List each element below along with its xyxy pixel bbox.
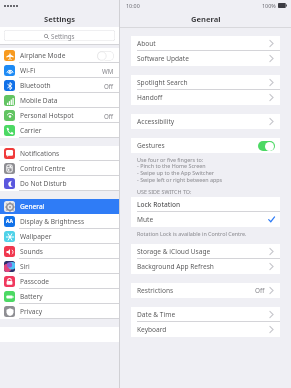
button[interactable]: Mobile Data [0,93,119,108]
staticText: Off [255,286,265,295]
staticText: Lock Rotation [137,200,181,209]
button[interactable]: Sounds [0,244,119,259]
staticText: Accessibility [137,117,175,126]
staticText: Display & Brightness [20,217,85,226]
button[interactable] [97,51,114,61]
button[interactable]: Passcode [0,274,119,289]
button[interactable]: Carrier [0,123,119,138]
staticText: Mute [137,215,154,224]
button[interactable]: Spotlight Search [131,75,280,90]
staticText: Wi-Fi [20,66,36,75]
staticText: Battery [20,292,43,301]
staticText: WM [102,67,114,75]
staticText: General [20,202,45,211]
staticText: Control Centre [20,164,66,173]
button[interactable]: Wallpaper [0,229,119,244]
staticText: AA [6,218,13,225]
button[interactable]: Battery [0,289,119,304]
staticText: Sounds [20,247,43,256]
button[interactable]: Accessibility [131,114,280,129]
button[interactable]: Do Not Disturb [0,176,119,191]
staticText: USE SIDE SWITCH TO: [137,188,192,195]
staticText: Notifications [20,149,60,158]
staticText: Settings [44,14,76,24]
button[interactable]: Settings [4,30,115,41]
staticText: Storage & iCloud Usage [137,247,211,256]
button[interactable] [258,141,275,151]
staticText: Rotation Lock is available in Control Ce… [137,230,247,237]
staticText: Do Not Disturb [20,179,67,188]
staticText: About [137,39,156,48]
button[interactable]: Wi-Fi [0,63,119,78]
button[interactable]: Background App Refresh [131,259,280,274]
staticText: Personal Hotspot [20,111,74,120]
button[interactable]: Bluetooth [0,78,119,93]
button[interactable]: Storage & iCloud Usage [131,244,280,259]
button[interactable]: Airplane Mode [0,48,119,63]
staticText: Carrier [20,126,42,135]
staticText: Off [104,82,114,90]
button[interactable]: Privacy [0,304,119,319]
staticText: Spotlight Search [137,78,188,87]
staticText: Passcode [20,277,49,286]
staticText: 100% [262,2,276,9]
staticText: Restrictions [137,286,174,295]
button[interactable]: Date & Time [131,307,280,322]
button[interactable]: About [131,36,280,51]
button[interactable]: AA [0,214,119,229]
staticText: Use four or five fingers to: - Pinch to … [137,156,223,184]
button[interactable]: Notifications [0,146,119,161]
staticText: Privacy [20,307,42,316]
staticText: Bluetooth [20,81,51,90]
staticText: Gestures [137,141,165,150]
button[interactable]: Siri [0,259,119,274]
button[interactable]: Control Centre [0,161,119,176]
button[interactable]: Handoff [131,90,280,105]
button[interactable]: Keyboard [131,322,280,337]
button[interactable]: Lock Rotation [131,197,280,212]
staticText: Settings [51,32,75,40]
button[interactable]: Restrictions [131,283,280,298]
button[interactable]: General [0,199,119,214]
staticText: Background App Refresh [137,262,214,271]
staticText: Wallpaper [20,232,52,241]
staticText: Handoff [137,93,163,102]
staticText: General [191,14,221,24]
staticText: 10:00 [126,2,140,9]
staticText: Date & Time [137,310,176,319]
staticText: Keyboard [137,325,167,334]
button[interactable]: Gestures [131,138,280,153]
staticText: Off [104,112,114,120]
staticText: Software Update [137,54,189,63]
staticText: Airplane Mode [20,51,66,60]
staticText: Mobile Data [20,96,58,105]
button[interactable]: Mute [131,212,280,227]
staticText: Siri [20,262,30,271]
button[interactable]: Software Update [131,51,280,66]
button[interactable]: Personal Hotspot [0,108,119,123]
